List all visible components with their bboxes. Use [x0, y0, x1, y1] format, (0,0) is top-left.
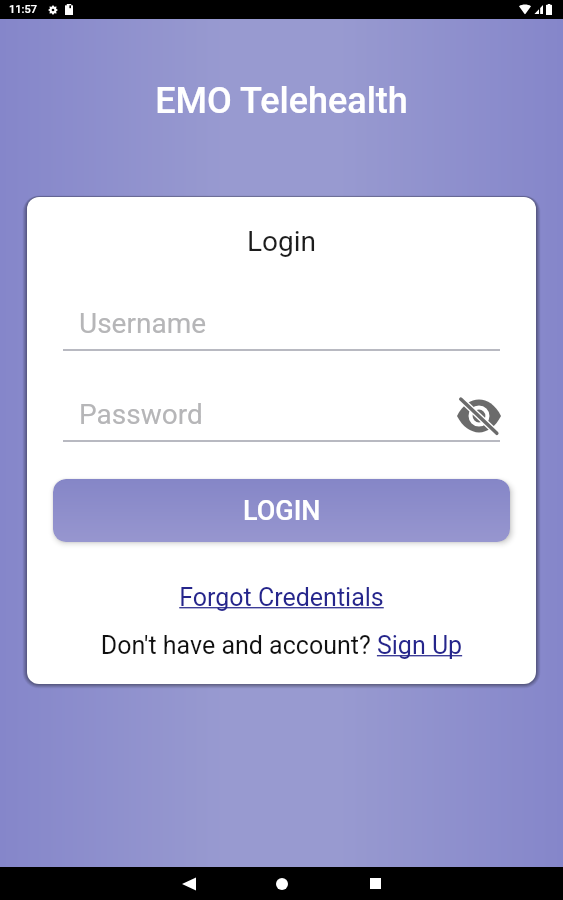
staticText: EMO Telehealth	[0, 80, 563, 122]
button[interactable]: Forgot Credentials	[27, 583, 536, 612]
button[interactable]: Back	[159, 867, 219, 900]
staticText: Password	[79, 398, 203, 431]
staticText: 11:57	[9, 3, 37, 16]
button[interactable]: LOGIN	[53, 479, 510, 542]
button[interactable]: Don't have and account? Sign Up	[27, 631, 536, 660]
button[interactable]: Home	[252, 867, 312, 900]
staticText: LOGIN	[243, 495, 321, 527]
staticText: Username	[79, 307, 207, 340]
button[interactable]: Recent apps	[345, 867, 405, 900]
button[interactable]: Show password	[455, 393, 503, 438]
staticText: Login	[27, 225, 536, 258]
